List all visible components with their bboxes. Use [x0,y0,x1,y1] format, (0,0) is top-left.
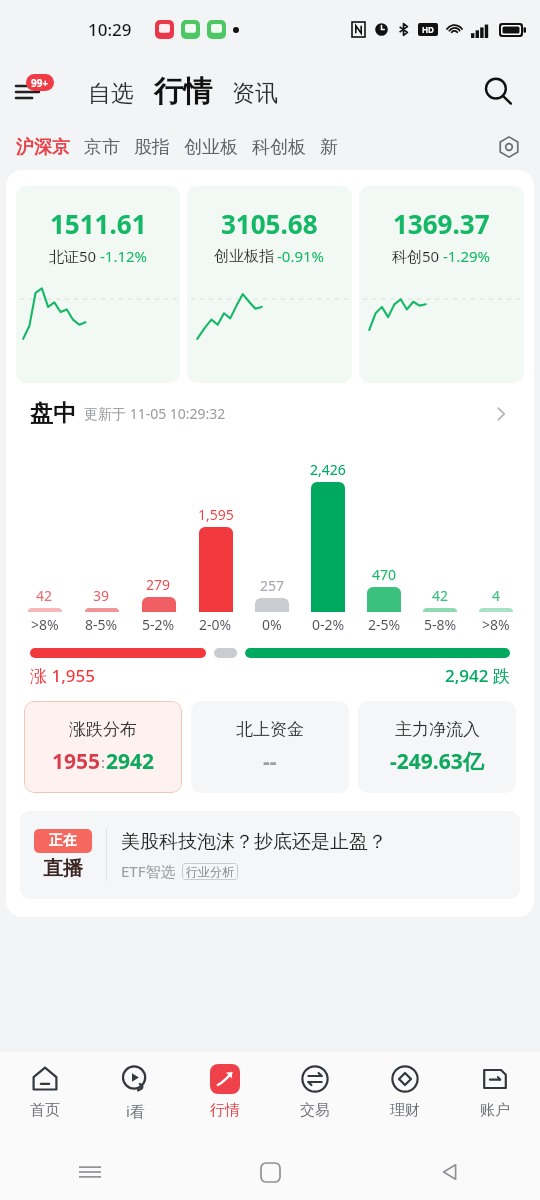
staticText: 5-8% [424,615,457,634]
staticText: 2-0% [199,615,232,634]
staticText: 8-5% [85,615,118,634]
staticText: 资讯 [232,79,278,108]
staticText: : [101,752,106,772]
button[interactable]: 盘中 [6,399,534,428]
button[interactable]: 自选 [88,79,134,110]
staticText: 257 [260,576,285,595]
staticText: 账户 [480,1101,510,1120]
button[interactable]: 行情 [154,73,212,110]
button[interactable]: 股指 [134,136,184,159]
staticText: 涨跌分布 [69,719,137,740]
staticText: 1511.61 [50,206,147,241]
staticText: 行情 [154,73,212,110]
staticText: 279 [146,575,171,594]
button[interactable]: 沪深京 [16,136,84,159]
staticText: 5-2% [142,615,175,634]
button[interactable]: 3105.68 [187,186,352,383]
staticText: -- [263,747,277,776]
staticText: 创业板 [184,136,238,159]
button[interactable]: 1511.61 [16,186,180,383]
button[interactable]: Search [478,71,518,111]
staticText: 沪深京 [16,136,70,159]
staticText: 北证50 [49,246,97,266]
staticText: i看 [126,1101,145,1121]
button[interactable]: Recents [0,1144,180,1200]
staticText: 行情 [210,1101,240,1120]
staticText: 4 [492,586,501,605]
staticText: 涨 1,955 [30,664,95,687]
button[interactable]: 资讯 [232,79,278,110]
button[interactable]: 理财 [360,1052,450,1144]
button[interactable]: i看 [90,1052,180,1144]
button[interactable]: 账户 [450,1052,540,1144]
staticText: 新 [320,136,338,159]
button[interactable]: 京市 [84,136,134,159]
button[interactable]: Home [180,1144,360,1200]
staticText: 正在 [49,832,77,850]
staticText: 自选 [88,79,134,108]
staticText: 10:29 [88,18,132,41]
staticText: 1,595 [198,505,234,524]
staticText: 科创50 [392,246,440,266]
button[interactable]: 科创板 [252,136,320,159]
staticText: -1.12% [100,246,148,266]
staticText: 创业板指 [214,247,274,266]
staticText: 更新于 11-05 10:29:32 [84,404,226,423]
button[interactable]: 涨跌分布 [24,701,182,793]
staticText: 42 [36,586,53,605]
staticText: 39 [93,586,110,605]
staticText: 京市 [84,136,120,159]
staticText: 主力净流入 [395,719,480,740]
button[interactable]: More categories [494,132,524,162]
staticText: 股指 [134,136,170,159]
staticText: 科创板 [252,136,306,159]
button[interactable]: 行情 [180,1052,270,1144]
staticText: ETF智选 [121,861,176,881]
button[interactable]: 首页 [0,1052,90,1144]
staticText: >8% [482,615,510,634]
staticText: -0.91% [277,246,325,266]
button[interactable]: 北上资金 [191,701,349,793]
staticText: 盘中 [30,399,76,428]
staticText: 交易 [300,1101,330,1120]
staticText: 0% [262,615,282,634]
staticText: >8% [31,615,59,634]
staticText: 42 [432,586,449,605]
button[interactable]: 正在 [20,811,520,899]
staticText: 首页 [30,1101,60,1120]
staticText: 2-5% [368,615,401,634]
button[interactable]: 1369.37 [359,186,524,383]
staticText: -249.63亿 [390,747,484,776]
staticText: 理财 [390,1101,420,1120]
button[interactable]: 新 [320,136,352,159]
staticText: 2942 [106,747,155,776]
staticText: 1955 [52,747,101,776]
staticText: 2,426 [310,460,346,479]
staticText: 美股科技泡沫？抄底还是止盈？ [121,830,387,854]
button[interactable]: 交易 [270,1052,360,1144]
staticText: 99+ [31,76,49,90]
staticText: 0-2% [312,615,345,634]
staticText: -1.29% [443,246,491,266]
staticText: HD [422,24,434,35]
button[interactable]: Menu [16,81,44,101]
staticText: 470 [372,565,397,584]
staticText: 北上资金 [236,719,304,740]
staticText: 1369.37 [393,206,490,241]
button[interactable]: Back [360,1144,540,1200]
staticText: 2,942 跌 [445,664,510,687]
button[interactable]: 创业板 [184,136,252,159]
button[interactable]: 主力净流入 [358,701,516,793]
staticText: 直播 [43,856,83,881]
staticText: 3105.68 [221,206,318,241]
staticText: 行业分析 [186,864,234,879]
